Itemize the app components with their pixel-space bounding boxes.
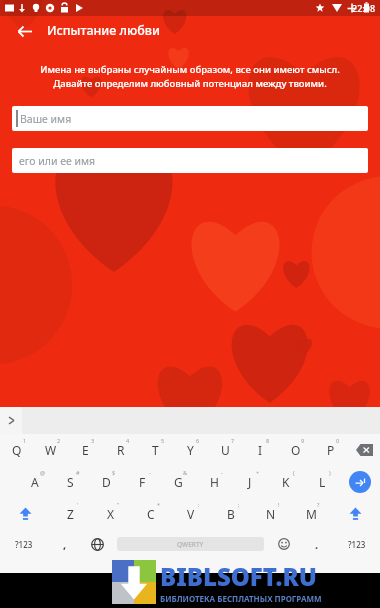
button[interactable]: W: [34, 434, 68, 466]
staticText: ?123: [15, 539, 33, 550]
button[interactable]: R: [103, 434, 138, 466]
staticText: :: [198, 501, 200, 508]
staticText: *: [157, 501, 161, 508]
staticText: ?: [317, 501, 320, 508]
button[interactable]: ?123: [333, 529, 380, 559]
button[interactable]: Language: [81, 529, 114, 559]
button[interactable]: B: [211, 498, 251, 529]
staticText: ,: [63, 537, 67, 552]
button[interactable]: I: [243, 434, 278, 466]
button[interactable]: T: [138, 434, 173, 466]
staticText: 8: [266, 437, 270, 444]
staticText: E: [82, 442, 89, 458]
button[interactable]: F: [124, 466, 160, 498]
button[interactable]: X: [91, 498, 131, 529]
staticText: B: [227, 506, 235, 522]
staticText: T: [152, 442, 159, 458]
staticText: C: [147, 506, 155, 522]
staticText: 7: [231, 437, 235, 444]
button[interactable]: D: [88, 466, 124, 498]
button[interactable]: .: [300, 529, 333, 559]
button[interactable]: ?123: [0, 529, 48, 559]
staticText: G: [174, 474, 183, 490]
staticText: S: [67, 474, 74, 490]
button[interactable]: P: [313, 434, 348, 466]
button[interactable]: M: [291, 498, 331, 529]
button[interactable]: N: [251, 498, 291, 529]
staticText: Ваше имя: [20, 112, 72, 126]
staticText: W: [45, 442, 57, 458]
staticText: D: [102, 474, 111, 490]
staticText: 5: [161, 437, 165, 444]
staticText: 4: [126, 437, 130, 444]
staticText: 0: [336, 437, 340, 444]
staticText: -: [149, 469, 151, 476]
button[interactable]: Z: [50, 498, 91, 529]
staticText: (: [293, 469, 295, 476]
staticText: Имена не выбраны случайным образом, все …: [14, 63, 366, 90]
staticText: R: [117, 442, 125, 458]
staticText: +: [256, 469, 260, 476]
button[interactable]: K: [268, 466, 304, 498]
staticText: $: [112, 469, 116, 476]
button[interactable]: L: [304, 466, 340, 498]
staticText: Q: [12, 442, 22, 458]
button[interactable]: J: [232, 466, 268, 498]
staticText: Y: [187, 442, 194, 458]
staticText: #: [76, 469, 80, 476]
button[interactable]: Y: [173, 434, 208, 466]
button[interactable]: Emoji: [267, 529, 300, 559]
button[interactable]: ,: [48, 529, 81, 559]
button[interactable]: Shift: [0, 498, 50, 529]
staticText: 3: [91, 437, 95, 444]
button[interactable]: Enter: [340, 466, 380, 498]
staticText: 1: [23, 437, 27, 444]
staticText: его или ее имя: [19, 154, 96, 168]
staticText: P: [327, 442, 335, 458]
staticText: K: [282, 474, 290, 490]
staticText: 9: [301, 437, 305, 444]
staticText: @: [40, 469, 45, 476]
staticText: -: [221, 469, 223, 476]
staticText: J: [248, 474, 252, 490]
staticText: .: [315, 537, 319, 552]
button[interactable]: O: [278, 434, 313, 466]
button[interactable]: C: [131, 498, 171, 529]
staticText: V: [187, 506, 195, 522]
staticText: ;: [238, 501, 240, 508]
staticText: I: [258, 442, 263, 458]
button[interactable]: H: [196, 466, 232, 498]
staticText: ': [77, 501, 79, 508]
staticText: BIBLSOFT.RU: [160, 560, 317, 593]
staticText: X: [107, 506, 115, 522]
staticText: Испытание любви: [47, 22, 160, 39]
button[interactable]: U: [208, 434, 243, 466]
staticText: 6: [196, 437, 200, 444]
button[interactable]: G: [160, 466, 196, 498]
button[interactable]: Space: [117, 537, 264, 551]
staticText: !: [278, 501, 280, 508]
staticText: A: [31, 474, 39, 490]
staticText: Z: [67, 506, 74, 522]
staticText: U: [221, 442, 230, 458]
staticText: ": [117, 501, 120, 508]
button[interactable]: V: [171, 498, 211, 529]
button[interactable]: Q: [0, 434, 34, 466]
button[interactable]: S: [52, 466, 88, 498]
staticText: &: [183, 469, 188, 476]
button[interactable]: E: [68, 434, 103, 466]
staticText: M: [306, 506, 317, 522]
button[interactable]: Ваше имя: [12, 106, 368, 131]
button[interactable]: A: [17, 466, 52, 498]
button[interactable]: [0, 407, 380, 434]
button[interactable]: Back: [12, 19, 36, 43]
staticText: ?123: [348, 539, 366, 550]
staticText: 2: [57, 437, 61, 444]
staticText: ): [329, 469, 331, 476]
staticText: N: [266, 506, 276, 522]
button[interactable]: его или ее имя: [12, 148, 368, 173]
staticText: H: [210, 474, 219, 490]
staticText: F: [139, 474, 146, 490]
button[interactable]: Backspace: [348, 434, 380, 466]
button[interactable]: Shift: [331, 498, 380, 529]
